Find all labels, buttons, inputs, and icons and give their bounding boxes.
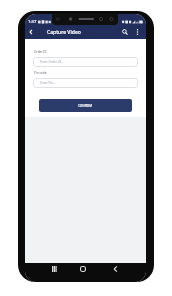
button[interactable]: Search bbox=[119, 25, 131, 39]
staticText: Pin code bbox=[34, 71, 47, 75]
staticText: CONFIRM bbox=[78, 104, 93, 108]
button[interactable]: Enter Pin... bbox=[33, 78, 138, 88]
button[interactable]: Home bbox=[76, 263, 89, 275]
button[interactable]: Enter Order ID... bbox=[33, 57, 138, 67]
staticText: Capture Video bbox=[47, 29, 81, 36]
button[interactable]: More options bbox=[131, 25, 143, 39]
button[interactable]: Recent apps bbox=[48, 263, 61, 275]
button[interactable]: CONFIRM bbox=[39, 99, 132, 112]
staticText: Enter Order ID... bbox=[40, 60, 64, 64]
staticText: 1:37 bbox=[28, 19, 37, 25]
staticText: Enter Pin... bbox=[40, 81, 56, 85]
button[interactable]: Back bbox=[109, 263, 122, 275]
button[interactable]: Back bbox=[25, 25, 37, 39]
staticText: Order ID bbox=[34, 50, 47, 54]
